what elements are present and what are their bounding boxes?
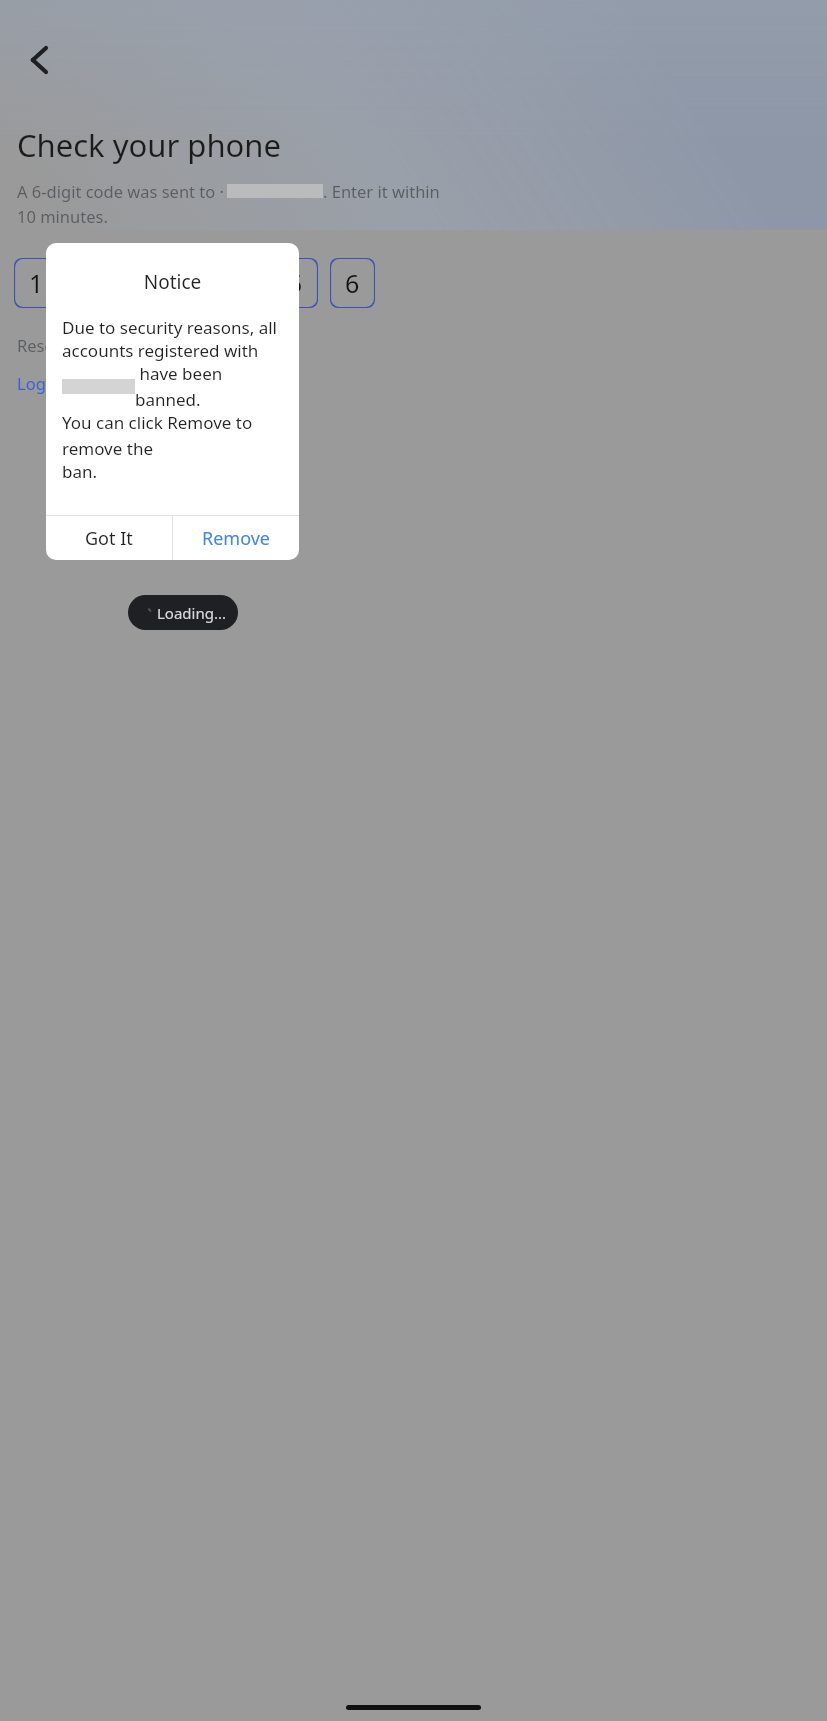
staticText: ban. xyxy=(62,460,98,483)
button[interactable]: Got It xyxy=(46,516,172,560)
button[interactable]: Log in xyxy=(17,372,65,394)
button[interactable]: Resend in 51s xyxy=(17,334,124,356)
staticText: Loading... xyxy=(157,603,227,623)
button[interactable]: Remove xyxy=(173,516,299,560)
button[interactable]: 5 xyxy=(273,258,318,308)
button[interactable]: 6 xyxy=(330,258,375,308)
staticText: 10 minutes. xyxy=(17,205,108,227)
staticText: Notice xyxy=(46,269,299,295)
button[interactable]: Back xyxy=(14,34,66,86)
button[interactable]: 1 xyxy=(14,258,59,308)
button[interactable]: 3 xyxy=(128,258,173,308)
staticText: 5 xyxy=(288,266,303,300)
staticText: . Enter it within xyxy=(323,180,440,202)
staticText: A 6-digit code was sent to · xyxy=(17,180,225,202)
staticText: have been banned. xyxy=(135,362,283,411)
staticText: 3 xyxy=(143,266,158,300)
staticText: 6 xyxy=(345,266,360,300)
staticText: accounts registered with xyxy=(62,339,259,362)
staticText: Check your phone xyxy=(17,124,281,166)
staticText: 1 xyxy=(29,266,44,300)
staticText: Remove xyxy=(202,526,271,551)
staticText: You can click Remove to remove the xyxy=(62,411,283,460)
staticText: Got It xyxy=(85,526,133,551)
staticText: Due to security reasons, all xyxy=(62,316,277,339)
